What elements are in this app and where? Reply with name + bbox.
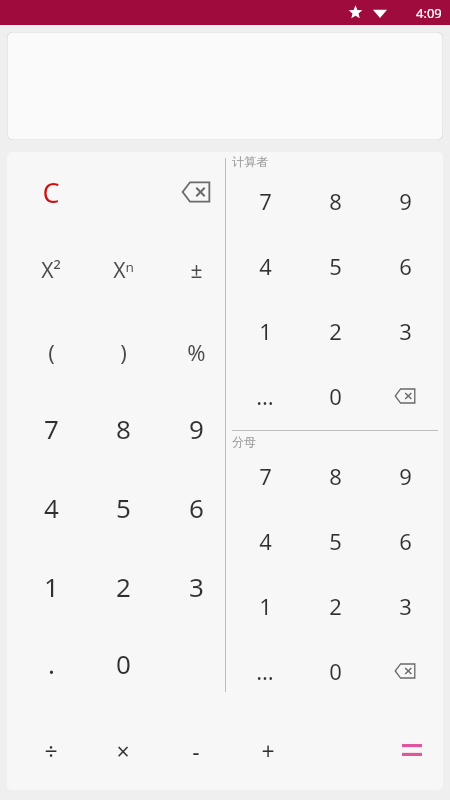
staticText: (: [48, 337, 55, 367]
staticText: 8: [329, 461, 342, 491]
staticText: Xⁿ: [113, 256, 134, 285]
button[interactable]: 8: [93, 404, 153, 452]
staticText: %: [187, 337, 206, 367]
button[interactable]: 6: [166, 483, 226, 531]
button[interactable]: 4: [239, 520, 291, 562]
staticText: 5: [329, 526, 342, 556]
staticText: 8: [329, 186, 342, 216]
staticText: ): [120, 337, 127, 367]
button[interactable]: 2: [93, 562, 153, 610]
staticText: 7: [259, 461, 272, 491]
button[interactable]: 1: [239, 585, 291, 627]
staticText: 7: [259, 186, 272, 216]
staticText: 2: [116, 569, 131, 604]
button[interactable]: ÷: [21, 726, 81, 774]
button[interactable]: 7: [21, 404, 81, 452]
staticText: 计算者: [232, 154, 268, 169]
button[interactable]: +: [238, 726, 298, 774]
button[interactable]: ±: [166, 248, 226, 292]
button[interactable]: Xⁿ: [93, 248, 153, 292]
staticText: 9: [189, 411, 204, 446]
button[interactable]: 4: [21, 483, 81, 531]
staticText: 0: [329, 656, 342, 686]
staticText: 6: [399, 251, 412, 281]
staticText: 2: [329, 591, 342, 621]
staticText: 1: [44, 569, 59, 604]
staticText: 6: [189, 490, 204, 525]
staticText: 8: [116, 411, 131, 446]
button[interactable]: 0: [309, 650, 361, 692]
button[interactable]: 2: [309, 310, 361, 352]
button[interactable]: Backspace: [379, 375, 431, 417]
button[interactable]: 3: [379, 310, 431, 352]
button[interactable]: 3: [166, 562, 226, 610]
button[interactable]: (: [21, 330, 81, 374]
staticText: 0: [116, 646, 131, 681]
staticText: -: [192, 735, 200, 766]
button[interactable]: 6: [379, 520, 431, 562]
staticText: 0: [329, 381, 342, 411]
button[interactable]: 3: [379, 585, 431, 627]
button[interactable]: 8: [309, 180, 361, 222]
staticText: 4: [259, 526, 272, 556]
staticText: .: [48, 646, 55, 681]
staticText: …: [256, 381, 274, 411]
staticText: 3: [399, 591, 412, 621]
button[interactable]: %: [166, 330, 226, 374]
button[interactable]: 0: [93, 639, 153, 687]
button[interactable]: C: [25, 170, 77, 214]
button[interactable]: 9: [379, 455, 431, 497]
staticText: 4: [259, 251, 272, 281]
button[interactable]: Backspace: [170, 170, 222, 214]
button[interactable]: Backspace: [379, 650, 431, 692]
staticText: 3: [399, 316, 412, 346]
button[interactable]: .: [21, 639, 81, 687]
button[interactable]: 5: [309, 245, 361, 287]
button[interactable]: Equals: [382, 726, 442, 774]
staticText: X²: [41, 256, 61, 285]
button[interactable]: ×: [93, 726, 153, 774]
staticText: 5: [116, 490, 131, 525]
staticText: 9: [399, 186, 412, 216]
button[interactable]: …: [239, 375, 291, 417]
staticText: 6: [399, 526, 412, 556]
staticText: C: [42, 174, 60, 211]
button[interactable]: 9: [379, 180, 431, 222]
button[interactable]: -: [166, 726, 226, 774]
staticText: 1: [259, 591, 272, 621]
staticText: 4: [44, 490, 59, 525]
button[interactable]: 5: [93, 483, 153, 531]
button[interactable]: 1: [21, 562, 81, 610]
staticText: 分母: [232, 434, 256, 449]
staticText: 3: [189, 569, 204, 604]
button[interactable]: ): [93, 330, 153, 374]
button[interactable]: 4: [239, 245, 291, 287]
staticText: ×: [116, 735, 130, 766]
button[interactable]: X²: [21, 248, 81, 292]
button[interactable]: 1: [239, 310, 291, 352]
staticText: ±: [190, 256, 203, 285]
button[interactable]: 6: [379, 245, 431, 287]
staticText: ÷: [44, 735, 58, 766]
staticText: …: [256, 656, 274, 686]
button[interactable]: 8: [309, 455, 361, 497]
button[interactable]: 7: [239, 455, 291, 497]
staticText: +: [261, 735, 275, 766]
button[interactable]: 9: [166, 404, 226, 452]
button[interactable]: 5: [309, 520, 361, 562]
button[interactable]: 0: [309, 375, 361, 417]
staticText: 7: [44, 411, 59, 446]
staticText: 5: [329, 251, 342, 281]
button[interactable]: …: [239, 650, 291, 692]
staticText: 9: [399, 461, 412, 491]
button[interactable]: 2: [309, 585, 361, 627]
staticText: 2: [329, 316, 342, 346]
staticText: 4:09: [416, 4, 442, 22]
staticText: 1: [259, 316, 272, 346]
button[interactable]: 7: [239, 180, 291, 222]
